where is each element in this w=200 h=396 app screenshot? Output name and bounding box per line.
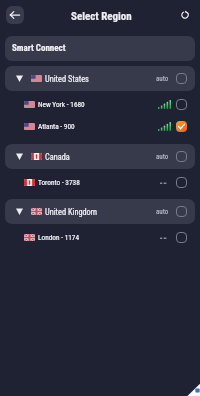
button[interactable]: New York - 1680 <box>0 93 200 115</box>
staticText: Atlanta - 900 <box>38 122 75 131</box>
button[interactable]: Back <box>6 6 24 24</box>
button[interactable]: Select <box>176 99 187 110</box>
staticText: Toronto - 3738 <box>38 178 80 187</box>
button[interactable]: Smart Connect <box>5 36 195 61</box>
staticText: Select Region <box>71 10 132 23</box>
button[interactable]: Canada <box>5 144 195 169</box>
staticText: London - 1174 <box>38 233 80 242</box>
button[interactable]: London - 1174 <box>0 226 200 248</box>
button[interactable]: Toronto - 3738 <box>0 171 200 193</box>
button[interactable]: Select <box>176 177 187 188</box>
button[interactable]: Select <box>176 206 187 217</box>
button[interactable]: Refresh <box>178 8 192 22</box>
staticText: auto <box>156 208 169 216</box>
button[interactable]: Select <box>176 73 187 84</box>
staticText: New York - 1680 <box>38 100 85 109</box>
button[interactable]: Select <box>176 151 187 162</box>
staticText: auto <box>156 153 169 161</box>
button[interactable]: Atlanta - 900 <box>0 115 200 137</box>
staticText: auto <box>156 75 169 83</box>
staticText: United Kingdom <box>45 207 98 217</box>
button[interactable]: Selected <box>176 121 187 132</box>
button[interactable]: Select <box>176 232 187 243</box>
button[interactable]: United States <box>5 66 195 91</box>
staticText: United States <box>45 74 89 84</box>
button[interactable]: United Kingdom <box>5 199 195 224</box>
staticText: Smart Connect <box>12 43 66 54</box>
staticText: Canada <box>45 152 70 162</box>
